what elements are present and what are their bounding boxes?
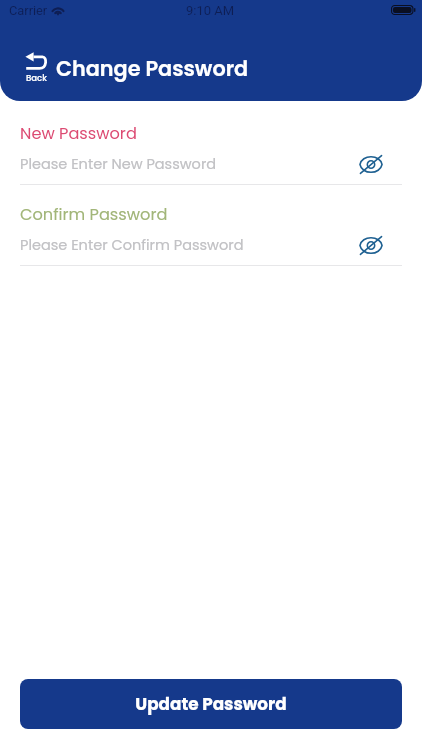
button[interactable]: Back [24,51,48,83]
staticText: Confirm Password [20,203,168,226]
staticText: Back [26,72,47,84]
staticText: Update Password [135,692,287,716]
staticText: Please Enter New Password [20,154,217,174]
staticText: Change Password [56,54,249,83]
staticText: New Password [20,122,137,145]
button[interactable]: Update Password [20,679,402,729]
staticText: Please Enter Confirm Password [20,235,244,255]
button[interactable]: Show password [359,150,402,178]
staticText: 9:10 AM [186,3,235,18]
staticText: Carrier [9,3,48,18]
button[interactable]: Show password [359,231,402,259]
